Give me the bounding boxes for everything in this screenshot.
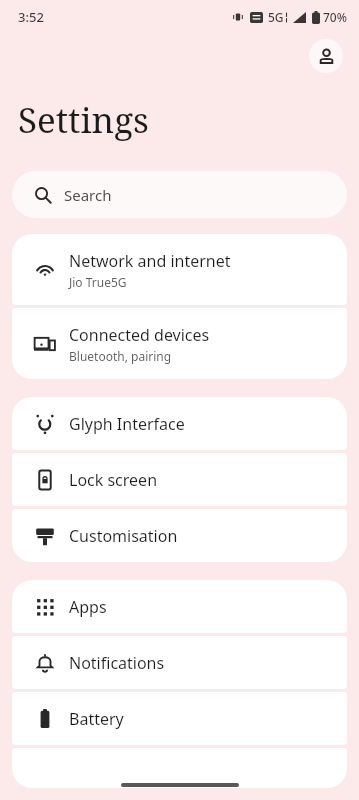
button[interactable]: Glyph Interface [12, 397, 347, 450]
staticText: 5G [268, 9, 284, 25]
button[interactable]: Lock screen [12, 453, 347, 506]
staticText: Jio True5G [69, 274, 127, 290]
button[interactable]: Account [309, 39, 343, 73]
staticText: Customisation [69, 525, 178, 547]
button[interactable]: Apps [12, 580, 347, 633]
button[interactable]: Battery [12, 692, 347, 745]
button[interactable]: Connected devices [12, 308, 347, 379]
button[interactable]: Notifications [12, 636, 347, 689]
button[interactable]: Network and internet [12, 234, 347, 305]
button[interactable]: Search [12, 171, 347, 218]
staticText: Bluetooth, pairing [69, 348, 172, 364]
staticText: Glyph Interface [69, 413, 185, 435]
staticText: Battery [69, 708, 124, 730]
staticText: 3:52 [18, 8, 44, 26]
staticText: Settings [18, 96, 149, 144]
staticText: Apps [69, 596, 107, 618]
staticText: Search [64, 185, 112, 205]
staticText: Network and internet [69, 250, 231, 272]
staticText: 70% [323, 9, 347, 25]
staticText: Connected devices [69, 324, 210, 346]
button[interactable] [12, 748, 347, 788]
staticText: Notifications [69, 652, 165, 674]
staticText: Lock screen [69, 469, 158, 491]
button[interactable]: Customisation [12, 509, 347, 562]
